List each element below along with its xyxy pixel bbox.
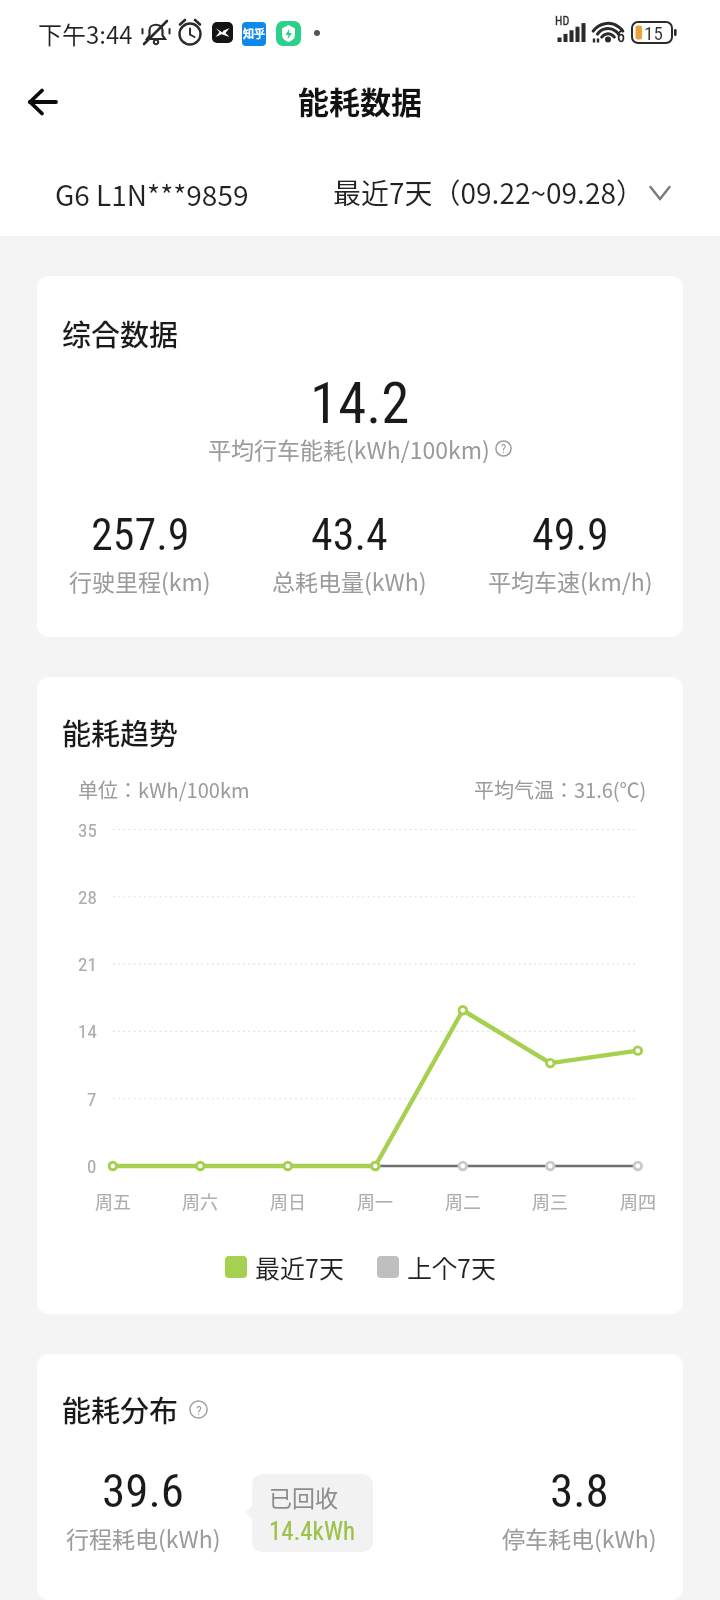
- staticText: 14.2: [310, 370, 410, 437]
- button[interactable]: 能耗趋势: [37, 677, 683, 1314]
- staticText: 39.6: [102, 1463, 184, 1518]
- button[interactable]: What is energy distribution: [189, 1400, 208, 1419]
- staticText: G6 L1N***9859: [55, 174, 249, 215]
- staticText: 单位：kWh/100km: [78, 775, 250, 804]
- staticText: 3.8: [550, 1463, 609, 1518]
- staticText: 能耗数据: [298, 78, 422, 123]
- staticText: 35: [78, 819, 97, 841]
- button[interactable]: 最近7天（09.22~09.28）: [333, 172, 675, 213]
- button[interactable]: What is average driving energy consumpti…: [495, 440, 512, 457]
- staticText: 257.9: [91, 509, 190, 561]
- staticText: 总耗电量(kWh): [272, 564, 427, 597]
- staticText: 知乎: [243, 25, 265, 41]
- staticText: 周一: [357, 1188, 393, 1214]
- staticText: 周五: [95, 1188, 131, 1214]
- staticText: 28: [78, 886, 97, 908]
- button[interactable]: 综合数据: [37, 276, 683, 637]
- staticText: 49.9: [532, 509, 609, 561]
- button[interactable]: Back: [14, 72, 74, 132]
- staticText: 14.4kWh: [269, 1517, 355, 1546]
- staticText: 7: [87, 1088, 97, 1110]
- staticText: ?: [196, 1402, 202, 1418]
- staticText: 0: [87, 1155, 97, 1177]
- staticText: ?: [501, 442, 507, 456]
- staticText: 周日: [270, 1188, 306, 1214]
- staticText: 停车耗电(kWh): [502, 1521, 657, 1554]
- staticText: 平均行车能耗(kWh/100km): [208, 432, 490, 465]
- staticText: 能耗分布: [62, 1388, 179, 1430]
- staticText: 周六: [182, 1188, 218, 1214]
- staticText: 周三: [532, 1188, 568, 1214]
- staticText: HD: [555, 14, 570, 28]
- staticText: 上个7天: [407, 1249, 496, 1285]
- button[interactable]: 能耗分布: [37, 1354, 683, 1600]
- button[interactable]: G6 L1N***9859: [41, 164, 263, 225]
- staticText: 15: [644, 22, 663, 44]
- staticText: 平均气温：31.6(℃): [474, 775, 647, 804]
- staticText: 最近7天（09.22~09.28）: [333, 172, 644, 213]
- staticText: 周二: [445, 1188, 481, 1214]
- staticText: 能耗趋势: [62, 711, 179, 753]
- staticText: 6: [617, 27, 625, 46]
- staticText: 综合数据: [62, 312, 179, 354]
- staticText: 21: [78, 953, 97, 975]
- staticText: 平均车速(km/h): [488, 564, 653, 597]
- staticText: 已回收: [269, 1480, 338, 1513]
- staticText: 14: [78, 1020, 97, 1042]
- staticText: 43.4: [311, 509, 388, 561]
- staticText: 最近7天: [255, 1249, 344, 1285]
- staticText: 行驶里程(km): [69, 564, 211, 597]
- staticText: 周四: [620, 1188, 656, 1214]
- staticText: 下午3:44: [38, 16, 133, 51]
- staticText: 行程耗电(kWh): [66, 1521, 221, 1554]
